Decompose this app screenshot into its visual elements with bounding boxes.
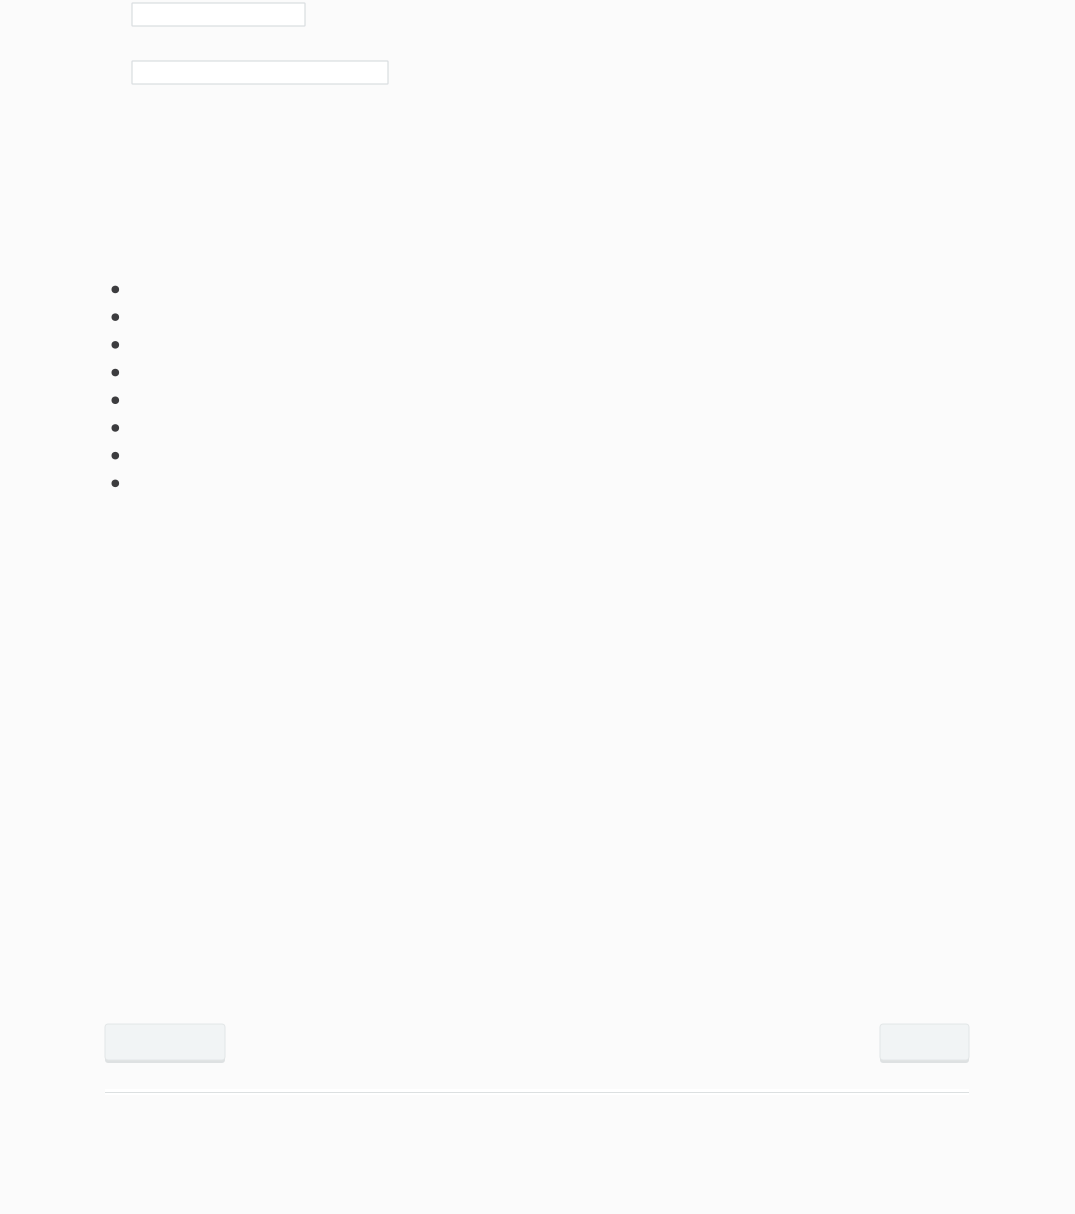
button[interactable]: Back (105, 1024, 225, 1063)
textField[interactable]: Field 2 (132, 61, 388, 84)
button[interactable]: Next (880, 1024, 969, 1063)
textField[interactable]: Field 1 (132, 3, 305, 26)
